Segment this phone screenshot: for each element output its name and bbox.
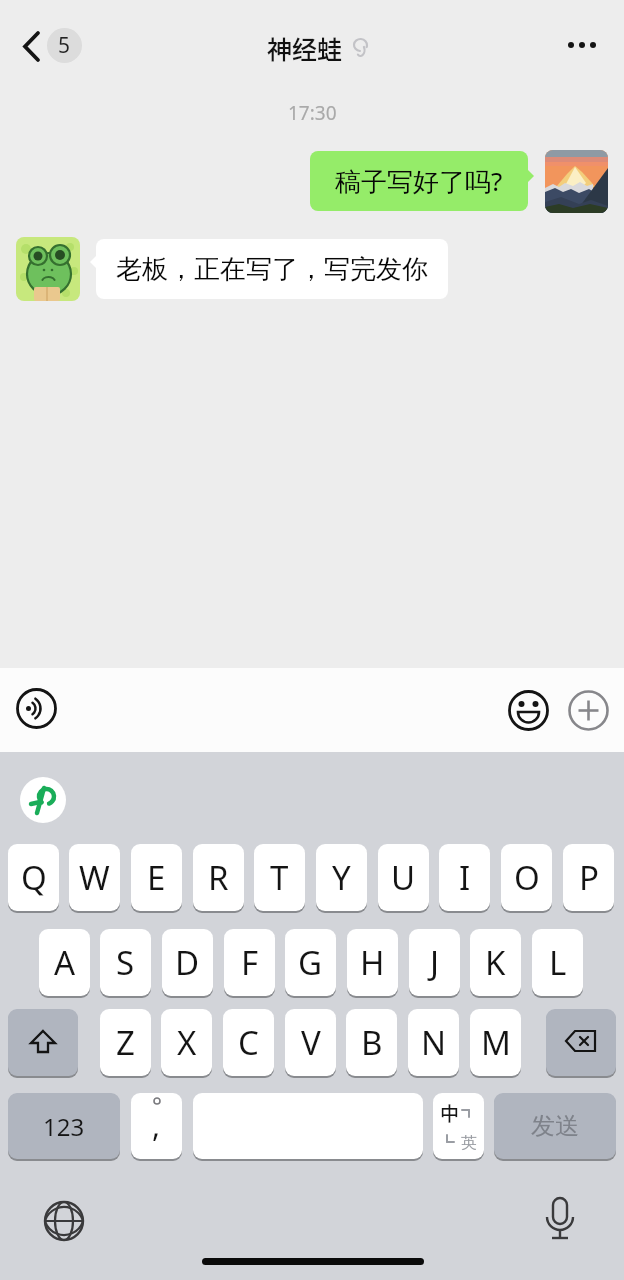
staticText: E <box>147 855 166 900</box>
button[interactable]: Y <box>316 844 367 911</box>
staticText: 英 <box>461 1133 477 1153</box>
button[interactable]: 123 <box>8 1093 120 1159</box>
button[interactable]: N <box>408 1009 459 1076</box>
staticText: 中 <box>440 1099 460 1127</box>
staticText: Q <box>21 855 47 900</box>
staticText: D <box>175 940 200 985</box>
staticText: G <box>298 940 323 985</box>
staticText: R <box>208 855 229 900</box>
staticText: M <box>481 1020 511 1065</box>
button[interactable] <box>545 150 608 213</box>
button[interactable]: R <box>193 844 244 911</box>
staticText: B <box>361 1020 383 1065</box>
staticText: K <box>485 940 506 985</box>
staticText: U <box>391 855 416 900</box>
button[interactable]: G <box>285 929 336 996</box>
staticText: J <box>430 940 440 985</box>
staticText: 神经蛙 <box>267 30 343 66</box>
button[interactable]: 5 <box>10 22 90 68</box>
staticText: 老板，正在写了，写完发你 <box>116 253 428 286</box>
button[interactable] <box>16 688 57 729</box>
staticText: N <box>421 1020 447 1065</box>
staticText: C <box>238 1020 259 1065</box>
staticText: L <box>549 940 567 985</box>
button[interactable]: V <box>285 1009 336 1076</box>
button[interactable]: F <box>224 929 275 996</box>
button[interactable]: S <box>100 929 151 996</box>
staticText: O <box>514 855 540 900</box>
button[interactable]: L <box>532 929 583 996</box>
staticText: 稿子写好了吗? <box>335 163 503 199</box>
button[interactable]: U <box>378 844 429 911</box>
staticText: 17:30 <box>288 100 337 126</box>
staticText: Z <box>116 1020 135 1065</box>
button[interactable]: T <box>254 844 305 911</box>
button[interactable] <box>20 777 66 823</box>
button[interactable]: Q <box>8 844 59 911</box>
staticText: F <box>241 940 259 985</box>
button[interactable]: 发送 <box>494 1093 616 1159</box>
button[interactable] <box>538 1196 582 1246</box>
staticText: , <box>152 1105 161 1146</box>
staticText: H <box>360 940 385 985</box>
button[interactable] <box>546 1009 616 1076</box>
button[interactable]: O <box>501 844 552 911</box>
button[interactable] <box>193 1093 423 1159</box>
button[interactable] <box>552 26 608 64</box>
button[interactable]: A <box>39 929 90 996</box>
button[interactable]: , <box>131 1093 182 1159</box>
staticText: X <box>177 1020 197 1065</box>
staticText: W <box>79 855 110 900</box>
button[interactable] <box>568 690 609 731</box>
button[interactable]: W <box>69 844 120 911</box>
button[interactable]: X <box>161 1009 212 1076</box>
button[interactable]: P <box>563 844 614 911</box>
staticText: V <box>301 1020 321 1065</box>
button[interactable]: K <box>470 929 521 996</box>
button[interactable]: 中 <box>433 1093 484 1159</box>
button[interactable]: C <box>223 1009 274 1076</box>
button[interactable]: H <box>347 929 398 996</box>
staticText: 5 <box>58 31 71 60</box>
button[interactable] <box>8 1009 78 1076</box>
staticText: 123 <box>43 1110 85 1143</box>
staticText: T <box>270 855 289 900</box>
button[interactable]: E <box>131 844 182 911</box>
button[interactable]: J <box>409 929 460 996</box>
button[interactable]: I <box>439 844 490 911</box>
button[interactable] <box>42 1199 86 1243</box>
button[interactable]: 老板，正在写了，写完发你 <box>96 239 448 299</box>
staticText: P <box>579 855 599 900</box>
staticText: 发送 <box>531 1111 579 1141</box>
button[interactable]: Z <box>100 1009 151 1076</box>
staticText: Y <box>332 855 351 900</box>
staticText: I <box>459 855 471 900</box>
button[interactable]: B <box>346 1009 397 1076</box>
staticText: A <box>54 940 76 985</box>
staticText: S <box>116 940 135 985</box>
button[interactable]: 稿子写好了吗? <box>310 151 528 211</box>
button[interactable] <box>508 690 549 731</box>
button[interactable] <box>16 237 80 301</box>
button[interactable]: D <box>162 929 213 996</box>
button[interactable]: M <box>470 1009 521 1076</box>
